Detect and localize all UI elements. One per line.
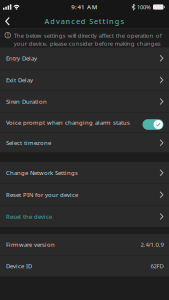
staticText: Advanced Settings: [44, 16, 124, 26]
staticText: Reset PIN for your device: [6, 191, 78, 199]
staticText: Change Network Settings: [6, 169, 78, 177]
button[interactable]: Select timezone: [0, 133, 169, 152]
staticText: Voice prompt when changing alarm status: [6, 118, 130, 126]
staticText: Entry Delay: [6, 54, 37, 62]
staticText: 2.4/1.0.9: [140, 240, 163, 248]
staticText: 9:41 AM: [71, 3, 98, 11]
button[interactable]: Siren Duration: [0, 91, 169, 112]
staticText: !: [7, 32, 8, 38]
button[interactable]: Voice prompt when changing alarm status: [0, 112, 169, 132]
button[interactable]: Back: [0, 17, 18, 26]
button[interactable]: Firmware version: [0, 234, 169, 255]
staticText: Device ID: [6, 262, 32, 270]
staticText: Reset the device: [6, 212, 52, 220]
staticText: The below settings will directly affect …: [14, 32, 162, 39]
staticText: Select timezone: [6, 139, 51, 147]
staticText: 62FD: [150, 262, 163, 270]
button[interactable]: Device ID: [0, 255, 169, 276]
button[interactable]: Change Network Settings: [0, 162, 169, 183]
button[interactable]: Reset the device: [0, 206, 169, 227]
button[interactable]: Reset PIN for your device: [0, 184, 169, 205]
staticText: Firmware version: [6, 240, 55, 248]
staticText: your device, please consider before maki…: [14, 39, 161, 47]
staticText: 100%: [137, 3, 151, 11]
button[interactable]: Entry Delay: [0, 47, 169, 69]
staticText: Siren Duration: [6, 97, 47, 105]
button[interactable]: Exit Delay: [0, 69, 169, 90]
staticText: Exit Delay: [6, 76, 33, 84]
